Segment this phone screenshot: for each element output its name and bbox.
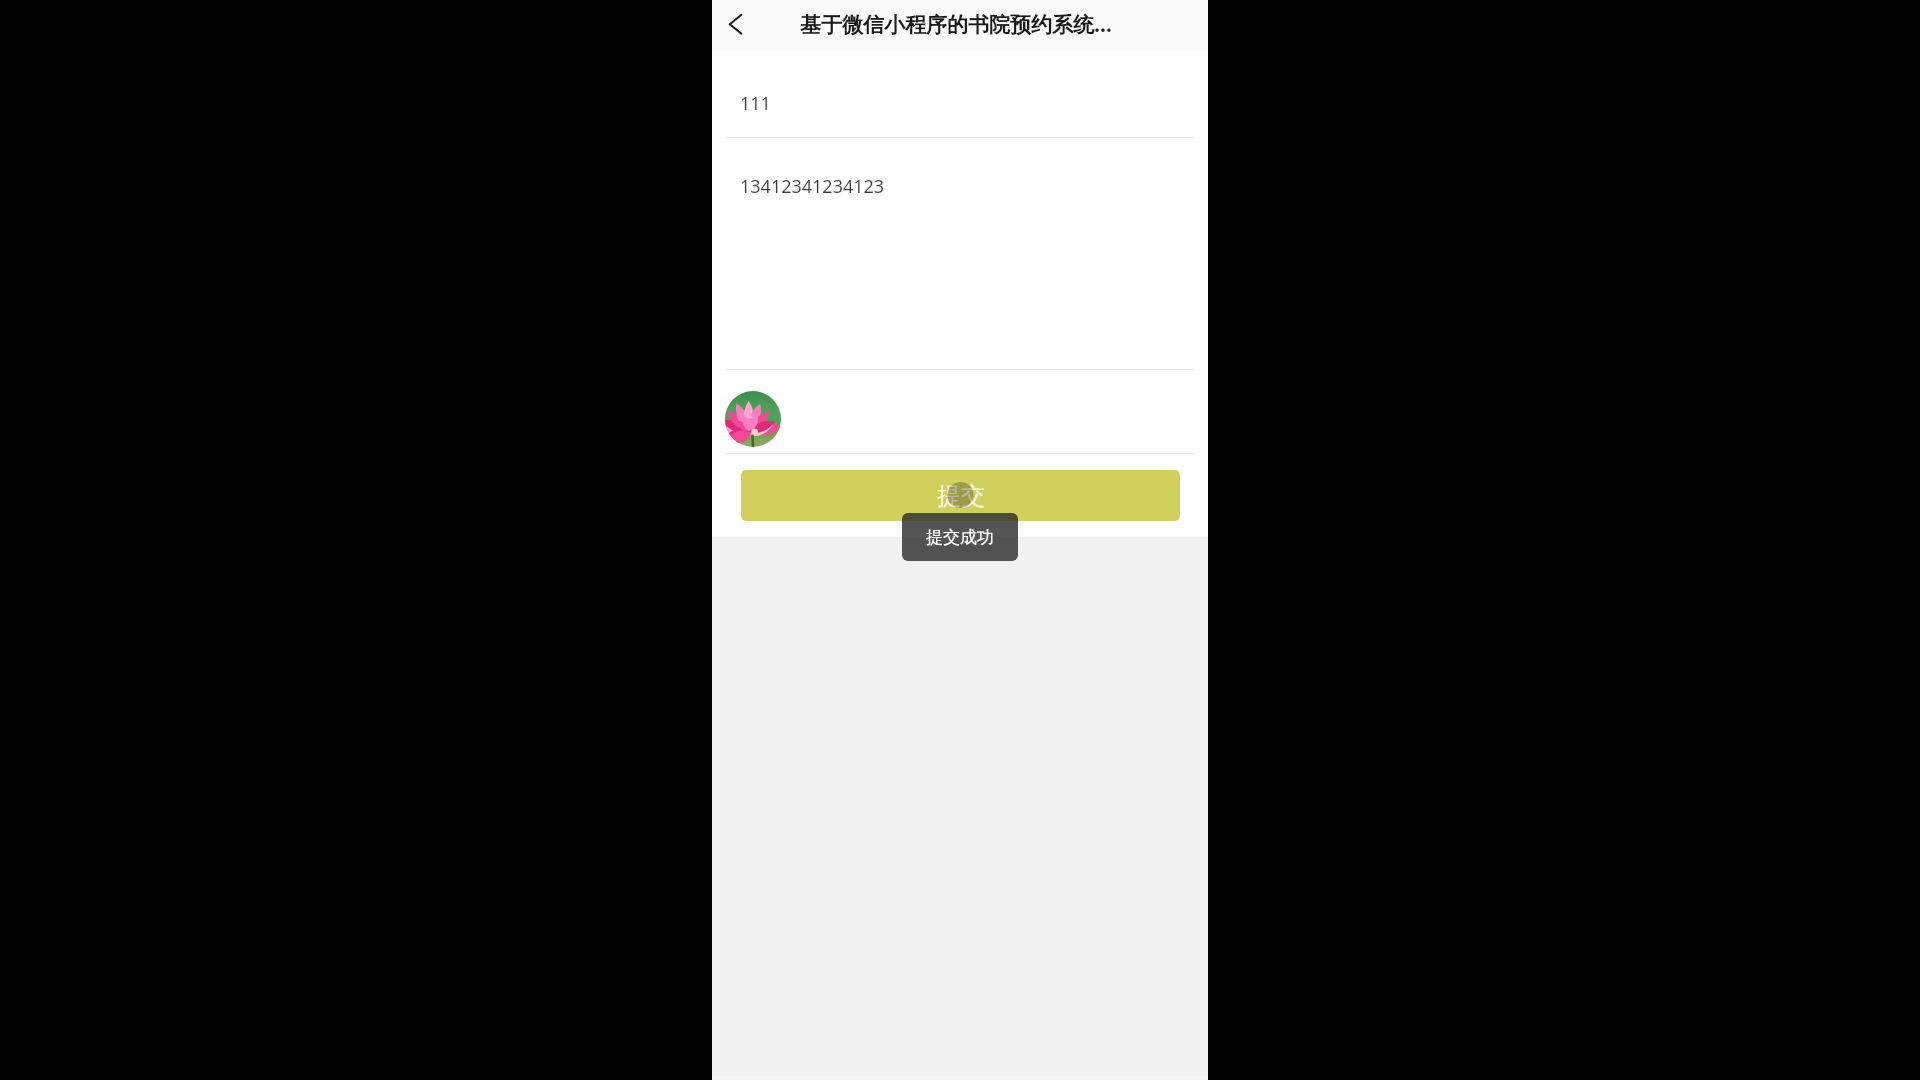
staticText: 基于微信小程序的书院预约系统…	[800, 10, 1112, 39]
staticText: 提交成功	[926, 527, 994, 548]
staticText: 111	[740, 91, 771, 116]
button[interactable]: 头像 Avatar	[712, 370, 1208, 453]
staticText: 提交	[937, 481, 985, 511]
button[interactable]: 头像 Avatar	[725, 391, 781, 447]
staticText: 13412341234123	[740, 174, 885, 199]
button[interactable]: 提交	[741, 470, 1180, 521]
button[interactable]: 111	[712, 51, 1208, 137]
button[interactable]: Back	[714, 4, 758, 48]
button[interactable]: 13412341234123	[712, 138, 1208, 369]
